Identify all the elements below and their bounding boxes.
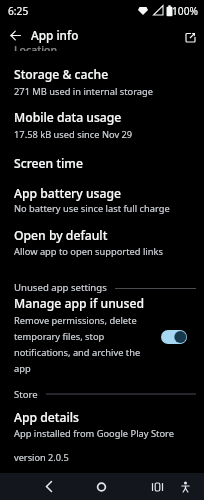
staticText: 17.58 kB used since Nov 29 xyxy=(14,128,133,141)
button[interactable] xyxy=(88,474,116,499)
staticText: version 2.0.5 xyxy=(14,451,69,464)
staticText: Allow app to open supported links xyxy=(14,245,163,258)
button[interactable]: Manage app if unused xyxy=(0,293,204,378)
staticText: Mobile data usage xyxy=(14,109,122,126)
button[interactable] xyxy=(6,26,26,46)
button[interactable] xyxy=(34,474,62,499)
staticText: Remove permissions, delete xyxy=(14,314,137,327)
staticText: app xyxy=(14,362,31,375)
button[interactable]: Mobile data usage xyxy=(0,105,204,147)
staticText: No battery use since last full charge xyxy=(14,202,170,215)
staticText: App info xyxy=(31,27,79,43)
button[interactable]: Storage & cache xyxy=(0,62,204,102)
staticText: Unused app settings xyxy=(14,281,107,294)
staticText: Location xyxy=(14,46,58,51)
button[interactable] xyxy=(180,27,200,47)
staticText: Open by default xyxy=(14,227,108,244)
staticText: App details xyxy=(14,409,79,426)
staticText: Manage app if unused xyxy=(14,295,144,312)
button[interactable] xyxy=(144,474,172,499)
staticText: App battery usage xyxy=(14,185,121,202)
staticText: Store xyxy=(14,388,38,401)
button[interactable]: Open by default xyxy=(0,223,204,265)
staticText: 100% xyxy=(172,4,198,18)
button[interactable]: App details xyxy=(0,406,204,448)
staticText: temporary files, stop xyxy=(14,330,105,343)
button[interactable]: App battery usage xyxy=(0,181,204,223)
staticText: App installed from Google Play Store xyxy=(14,427,174,440)
staticText: 6:25 xyxy=(8,4,29,18)
button[interactable] xyxy=(173,474,199,499)
staticText: notifications, and archive the xyxy=(14,346,141,359)
staticText: Storage & cache xyxy=(14,66,109,83)
button[interactable]: Screen time xyxy=(0,150,204,178)
button[interactable] xyxy=(157,327,191,347)
staticText: Screen time xyxy=(14,155,83,172)
staticText: 271 MB used in internal storage xyxy=(14,85,154,98)
